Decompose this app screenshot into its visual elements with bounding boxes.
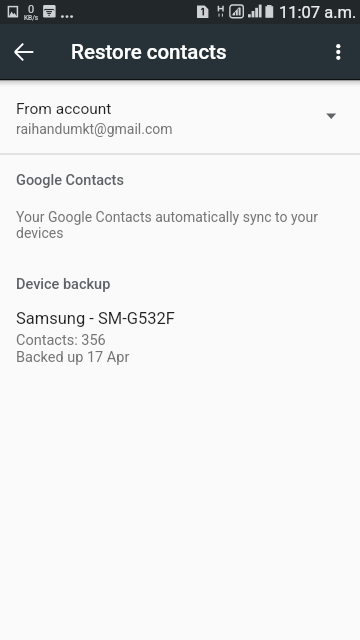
staticText: From account [16,100,112,118]
staticText: Google Contacts [16,172,124,189]
staticText: 11:07 a.m. [279,3,357,22]
staticText: KB/s [24,14,39,22]
staticText: 0 [28,3,35,16]
staticText: Contacts: 356 [16,332,106,349]
staticText: Backed up 17 Apr [16,349,130,366]
staticText: Your Google Contacts automatically sync … [16,209,344,241]
button[interactable]: Samsung - SM-G532F [0,309,360,366]
staticText: Device backup [16,276,111,293]
button[interactable]: Navigate up [0,28,48,76]
staticText: Samsung - SM-G532F [16,309,175,328]
staticText: Restore contacts [71,40,227,64]
staticText: raihandumkt@gmail.com [16,121,173,137]
button[interactable]: More options [312,28,360,76]
button[interactable]: From account [0,79,360,153]
